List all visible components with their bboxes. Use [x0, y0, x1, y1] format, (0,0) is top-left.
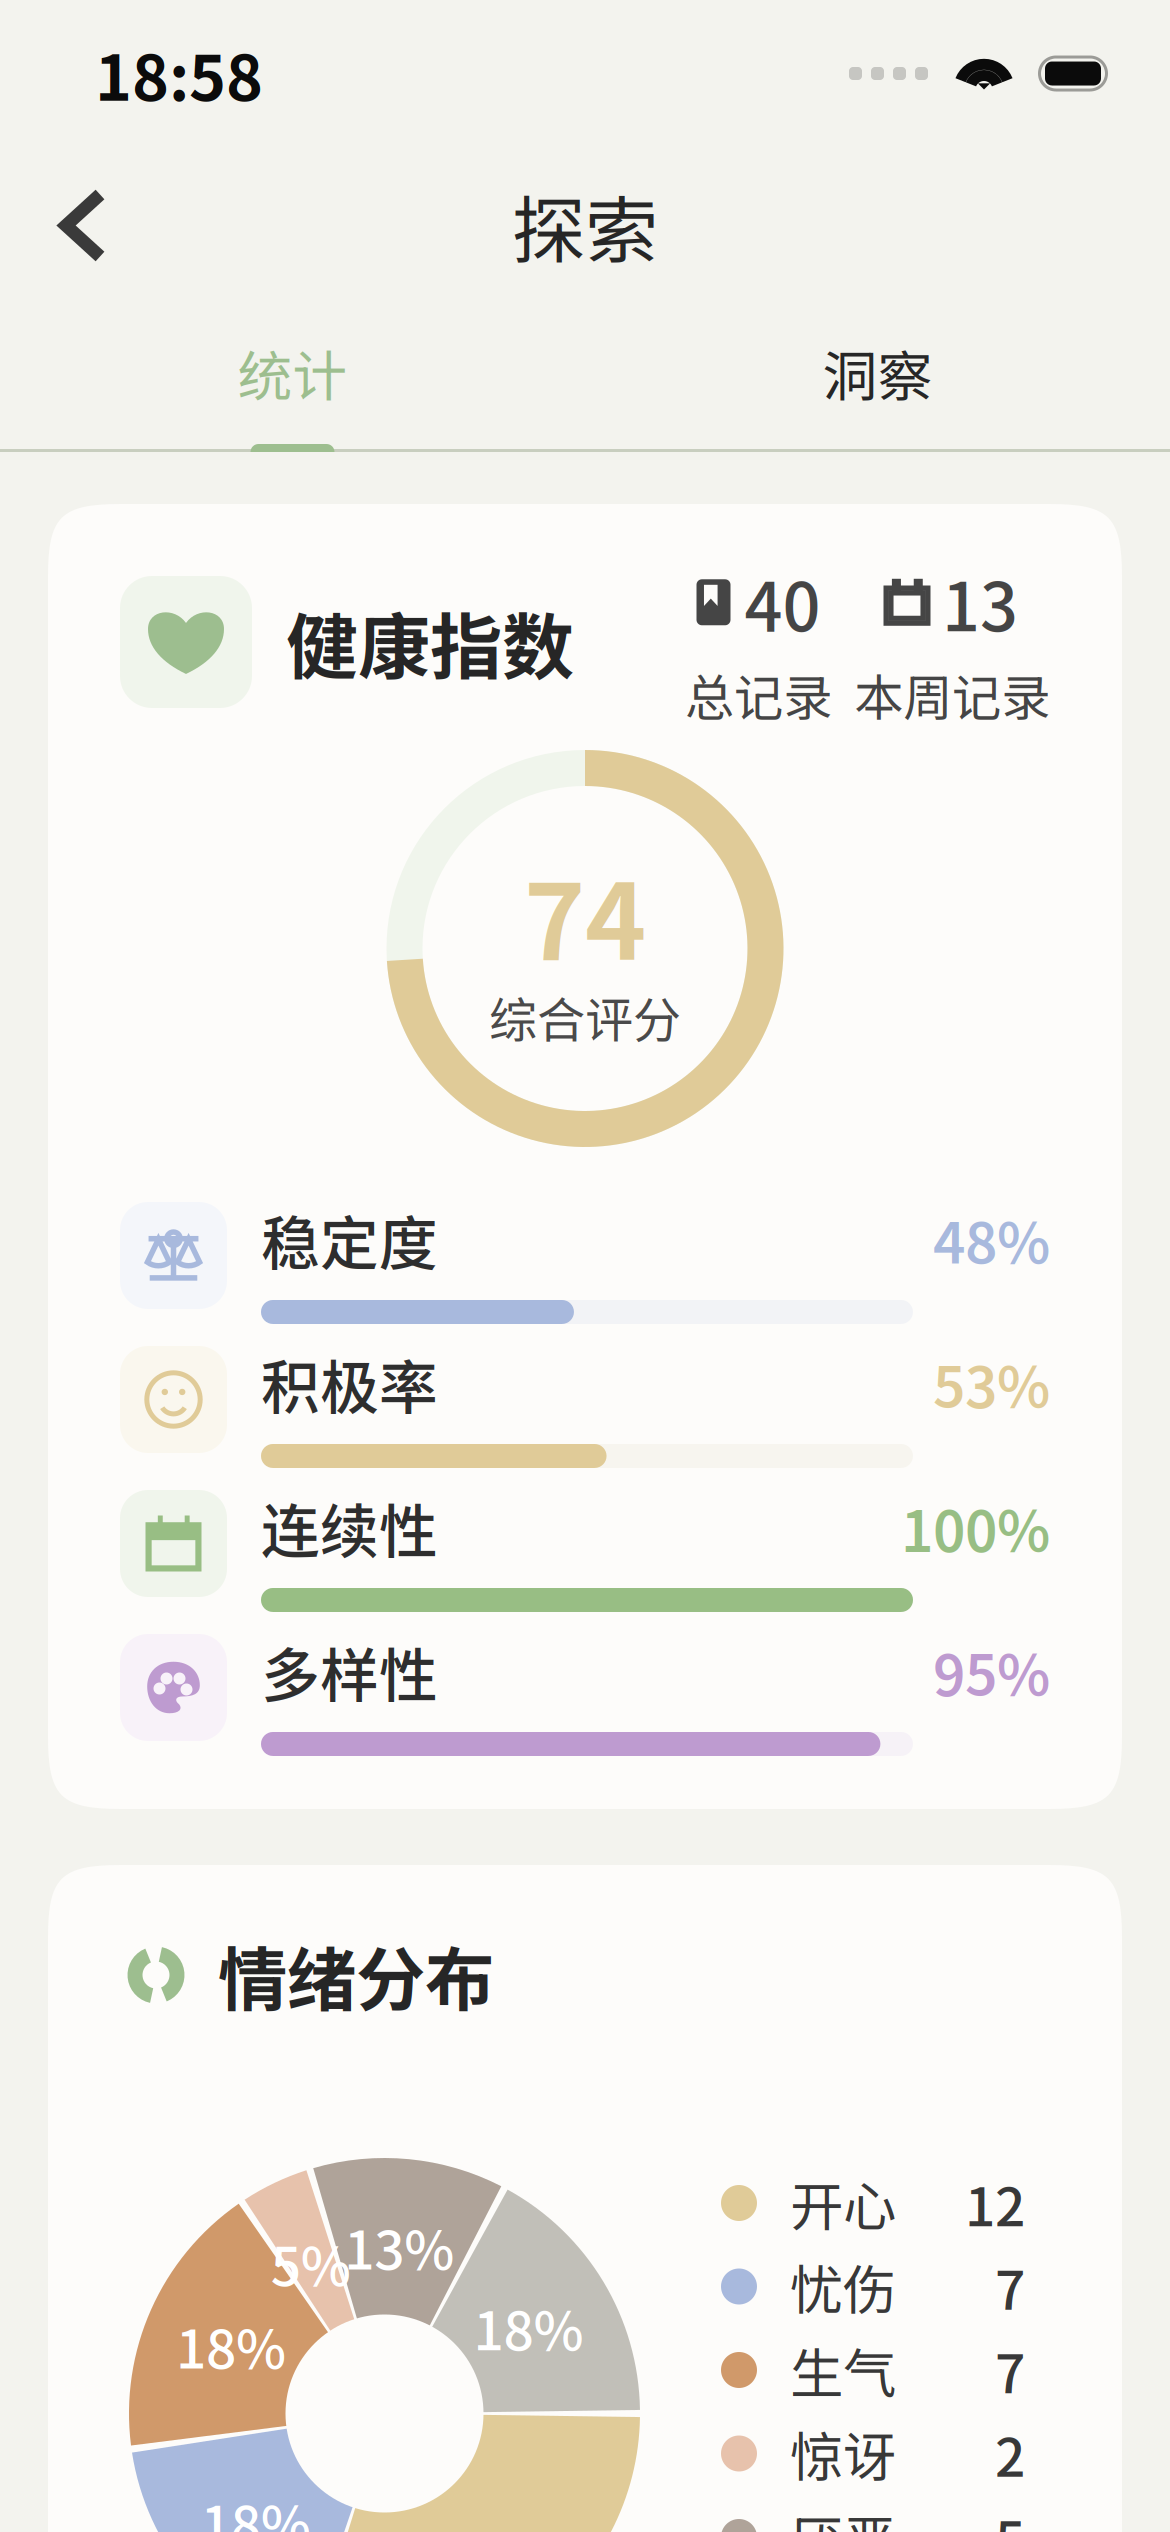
- staticText: 总记录: [685, 658, 832, 730]
- staticText: 18:58: [95, 28, 263, 119]
- staticText: 生气: [790, 2331, 896, 2409]
- staticText: 洞察: [822, 333, 932, 412]
- staticText: 5: [995, 2498, 1025, 2532]
- staticText: 13%: [344, 2207, 454, 2285]
- staticText: 忧伤: [790, 2248, 896, 2325]
- staticText: 18%: [473, 2288, 583, 2366]
- staticText: 95%: [933, 1631, 1050, 1712]
- staticText: 本周记录: [854, 658, 1050, 730]
- staticText: 18%: [201, 2483, 311, 2532]
- staticText: 100%: [901, 1487, 1050, 1568]
- staticText: 惊讶: [790, 2415, 896, 2492]
- staticText: 7: [995, 2331, 1025, 2409]
- staticText: 40: [744, 554, 820, 650]
- staticText: 5%: [271, 2224, 351, 2301]
- staticText: 情绪分布: [218, 1925, 494, 2025]
- button[interactable]: 洞察: [585, 304, 1170, 452]
- staticText: 稳定度: [261, 1197, 438, 1282]
- button[interactable]: 统计: [0, 304, 585, 452]
- staticText: 13: [942, 554, 1018, 650]
- staticText: 7: [995, 2248, 1025, 2325]
- staticText: 2: [995, 2415, 1025, 2492]
- staticText: 连续性: [261, 1485, 438, 1570]
- staticText: 探索: [512, 172, 658, 279]
- staticText: 18%: [176, 2307, 286, 2384]
- staticText: 53%: [933, 1343, 1050, 1424]
- staticText: 12: [965, 2164, 1025, 2242]
- staticText: 开心: [790, 2164, 896, 2242]
- staticText: 统计: [237, 333, 347, 412]
- staticText: 综合评分: [489, 982, 681, 1051]
- button[interactable]: Back: [38, 166, 128, 284]
- staticText: 健康指数: [286, 590, 574, 694]
- staticText: 积极率: [261, 1341, 438, 1426]
- staticText: 厌恶: [790, 2498, 896, 2532]
- staticText: 多样性: [261, 1629, 438, 1714]
- staticText: 48%: [933, 1199, 1050, 1280]
- staticText: 74: [524, 839, 646, 990]
